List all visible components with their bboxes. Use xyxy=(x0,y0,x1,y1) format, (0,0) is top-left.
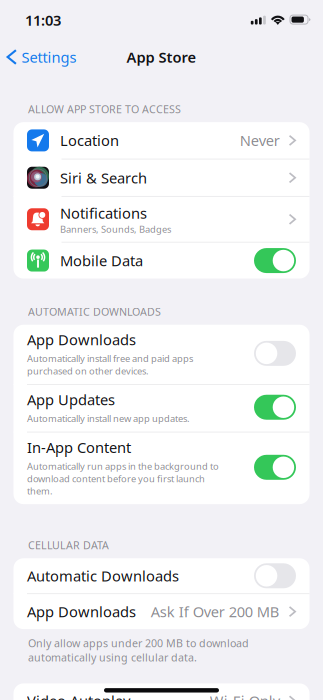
button[interactable]: In-App Content xyxy=(254,455,296,480)
staticText: ALLOW APP STORE TO ACCESS xyxy=(28,102,181,116)
staticText: In-App Content xyxy=(27,437,131,457)
staticText: CELLULAR DATA xyxy=(28,538,109,552)
staticText: Notifications xyxy=(60,203,147,223)
button[interactable]: Notifications xyxy=(13,197,309,242)
button[interactable]: App Downloads xyxy=(254,341,296,366)
button[interactable]: Mobile Data xyxy=(254,248,296,273)
staticText: Location xyxy=(60,131,119,150)
button[interactable]: App Updates xyxy=(254,395,296,420)
staticText: Video Autoplay xyxy=(27,691,130,700)
staticText: Automatically install new app updates. xyxy=(27,412,190,425)
staticText: Automatic Downloads xyxy=(27,566,179,586)
staticText: Wi-Fi Only xyxy=(210,691,280,700)
staticText: Mobile Data xyxy=(60,251,143,270)
staticText: App Downloads xyxy=(27,602,136,621)
button[interactable]: Settings xyxy=(0,42,76,72)
staticText: App Updates xyxy=(27,390,115,409)
button[interactable]: Automatic Downloads xyxy=(254,563,296,588)
staticText: Never xyxy=(240,131,280,150)
button[interactable]: Siri & Search xyxy=(13,159,309,196)
staticText: App Downloads xyxy=(27,330,136,349)
staticText: Only allow apps under 200 MB to download… xyxy=(28,636,249,664)
button[interactable]: Location xyxy=(13,122,309,159)
staticText: Automatically run apps in the background… xyxy=(27,460,219,497)
staticText: AUTOMATIC DOWNLOADS xyxy=(28,305,161,319)
staticText: Banners, Sounds, Badges xyxy=(60,223,171,235)
staticText: App Store xyxy=(126,47,196,67)
staticText: 11:03 xyxy=(25,10,61,30)
staticText: Ask If Over 200 MB xyxy=(151,602,280,621)
button[interactable]: Video Autoplay xyxy=(13,683,309,700)
staticText: Automatically install free and paid apps… xyxy=(27,352,193,377)
button[interactable]: App Downloads xyxy=(13,594,309,629)
staticText: Settings xyxy=(21,47,76,67)
staticText: Siri & Search xyxy=(60,168,147,187)
